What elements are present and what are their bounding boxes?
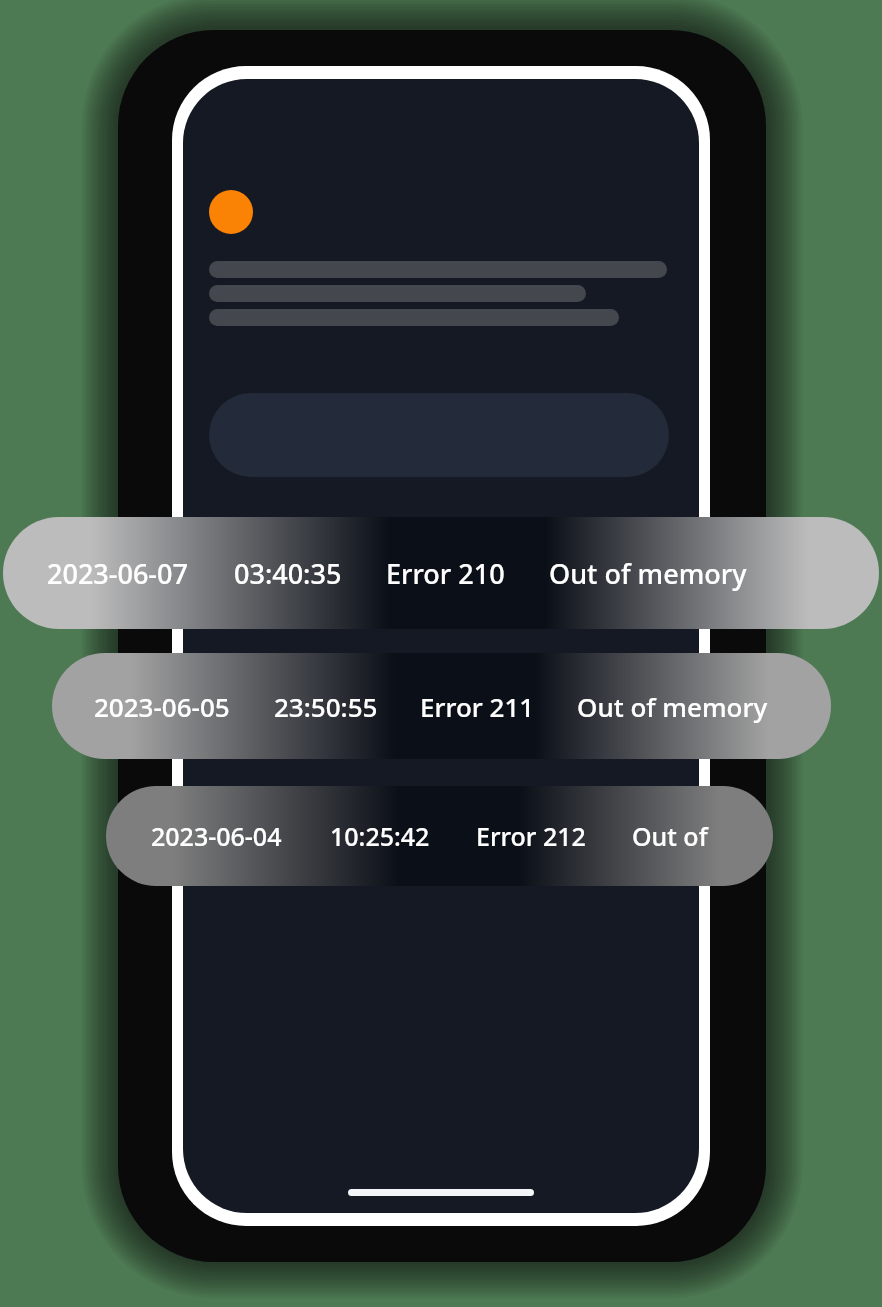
staticText: 23:50:55 — [274, 689, 378, 724]
staticText: Error 210 — [386, 555, 505, 592]
button[interactable]: 2023-06-05 — [52, 653, 831, 759]
staticText: Error 212 — [476, 819, 586, 853]
button[interactable] — [209, 393, 669, 477]
staticText: Out of memory exception occurred. — [549, 555, 879, 592]
staticText: 2023-06-05 — [94, 689, 230, 724]
staticText: 10:25:42 — [330, 819, 430, 853]
button[interactable]: 2023-06-07 — [3, 517, 879, 629]
button[interactable]: Profile avatar — [209, 190, 253, 234]
staticText: 2023-06-07 — [47, 555, 188, 592]
button[interactable]: 2023-06-04 — [106, 786, 773, 886]
staticText: Error 211 — [420, 689, 535, 724]
staticText: 2023-06-04 — [151, 819, 282, 853]
staticText: Out of memory exception occurred. — [577, 689, 831, 724]
staticText: Out of memory — [632, 819, 773, 853]
staticText: 03:40:35 — [234, 555, 342, 592]
